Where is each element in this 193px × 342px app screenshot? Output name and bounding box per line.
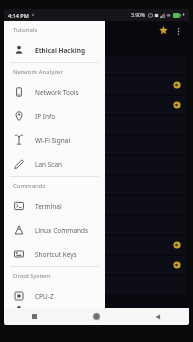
button[interactable]: IP Info [4, 104, 105, 128]
button[interactable] [6, 56, 187, 74]
button[interactable] [6, 236, 187, 254]
button[interactable]: Terminal [4, 194, 105, 218]
button[interactable]: More options [171, 24, 185, 38]
button[interactable]: Wi-Fi Signal [4, 128, 105, 152]
staticText: Network Analyzer [13, 68, 63, 76]
staticText: Lan Scan [35, 160, 63, 169]
button[interactable] [6, 256, 187, 274]
button[interactable] [6, 216, 187, 234]
staticText: CPU-Z [35, 292, 54, 301]
staticText: Wi-Fi Signal [35, 136, 71, 145]
button[interactable] [6, 196, 187, 214]
staticText: IP Info [35, 112, 56, 121]
button[interactable]: Recents [4, 308, 65, 325]
staticText: 3.90% [131, 12, 146, 19]
button[interactable] [6, 276, 187, 294]
staticText: Commands [13, 182, 46, 190]
button[interactable]: Ethical Hacking [4, 38, 105, 62]
button[interactable] [6, 116, 187, 134]
staticText: 4:14 PM [8, 12, 29, 19]
button[interactable]: Back [127, 308, 189, 325]
button[interactable] [6, 96, 187, 114]
staticText: Tutorials [13, 26, 38, 34]
button[interactable]: Rate app [156, 23, 171, 38]
button[interactable] [6, 156, 187, 174]
button[interactable]: Network Tools [4, 80, 105, 104]
button[interactable]: Lan Scan [4, 152, 105, 176]
staticText: Network Tools [35, 88, 79, 97]
staticText: + [182, 12, 185, 19]
button[interactable] [6, 136, 187, 154]
staticText: Shortcut Keys [35, 250, 77, 259]
staticText: Linux Commands [35, 226, 89, 235]
button[interactable]: Home [65, 308, 127, 325]
button[interactable]: CPU-Z [4, 284, 105, 308]
staticText: Droid System [13, 272, 51, 280]
button[interactable] [6, 176, 187, 194]
staticText: Ethical Hacking [35, 46, 86, 55]
button[interactable]: Shortcut Keys [4, 242, 105, 266]
button[interactable]: Linux Commands [4, 218, 105, 242]
button[interactable] [6, 76, 187, 94]
staticText: Terminal [35, 202, 62, 211]
